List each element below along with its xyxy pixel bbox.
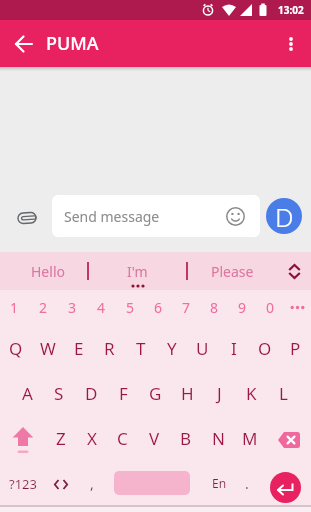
button[interactable]: Y xyxy=(156,324,187,369)
button[interactable] xyxy=(45,459,77,505)
staticText: 7 xyxy=(182,298,191,317)
button[interactable]: S xyxy=(43,369,75,414)
button[interactable]: B xyxy=(170,414,202,459)
staticText: 4 xyxy=(97,298,106,317)
button[interactable]: Z xyxy=(45,414,76,459)
staticText: S xyxy=(54,382,64,405)
button[interactable]: U xyxy=(187,324,218,369)
button[interactable]: D xyxy=(75,369,107,414)
button[interactable] xyxy=(0,414,45,459)
staticText: 9 xyxy=(238,298,247,317)
staticText: T xyxy=(136,337,146,360)
button[interactable] xyxy=(266,414,311,459)
button[interactable]: 8 xyxy=(200,290,228,324)
staticText: O xyxy=(258,337,272,360)
staticText: 1 xyxy=(10,298,19,317)
button[interactable]: X xyxy=(76,414,107,459)
button[interactable]: 0 xyxy=(256,290,284,324)
staticText: D xyxy=(275,199,294,234)
staticText: M xyxy=(242,427,258,450)
button[interactable]: T xyxy=(125,324,156,369)
staticText: K xyxy=(246,382,257,405)
staticText: , xyxy=(90,474,94,493)
staticText: 3 xyxy=(68,298,77,317)
button[interactable]: Hello xyxy=(0,252,87,290)
staticText: X xyxy=(87,427,97,450)
button[interactable]: I xyxy=(218,324,249,369)
button[interactable]: V xyxy=(138,414,170,459)
button[interactable] xyxy=(0,195,52,237)
button[interactable]: 4 xyxy=(87,290,116,324)
button[interactable]: 5 xyxy=(116,290,144,324)
staticText: 13:02 xyxy=(278,3,304,17)
button[interactable]: Q xyxy=(0,324,32,369)
staticText: B xyxy=(180,427,192,450)
staticText: V xyxy=(149,427,160,450)
button[interactable]: M xyxy=(234,414,266,459)
button[interactable]: L xyxy=(267,369,299,414)
staticText: C xyxy=(117,427,128,450)
staticText: Please xyxy=(211,262,254,281)
staticText: 8 xyxy=(210,298,219,317)
staticText: W xyxy=(40,337,56,360)
button[interactable] xyxy=(277,252,311,290)
staticText: R xyxy=(104,337,115,360)
button[interactable]: W xyxy=(32,324,63,369)
staticText: I xyxy=(231,337,237,360)
button[interactable]: Please xyxy=(188,252,277,290)
button[interactable]: K xyxy=(235,369,267,414)
staticText: Hello xyxy=(31,262,65,281)
staticText: N xyxy=(212,427,225,450)
staticText: 0 xyxy=(266,298,275,317)
staticText: E xyxy=(74,337,84,360)
button[interactable]: H xyxy=(171,369,203,414)
button[interactable]: ?123 xyxy=(0,459,45,505)
button[interactable]: 7 xyxy=(172,290,200,324)
staticText: J xyxy=(217,382,222,405)
staticText: En xyxy=(212,475,227,491)
button[interactable]: O xyxy=(249,324,280,369)
button[interactable] xyxy=(107,459,203,505)
button[interactable]: P xyxy=(280,324,311,369)
staticText: I'm xyxy=(127,262,148,281)
button[interactable]: Send message xyxy=(52,195,260,237)
button[interactable] xyxy=(259,459,311,505)
staticText: 6 xyxy=(154,298,163,317)
staticText: U xyxy=(196,337,209,360)
button[interactable]: D xyxy=(266,198,302,234)
button[interactable] xyxy=(284,290,311,324)
staticText: 2 xyxy=(39,298,48,317)
staticText: G xyxy=(149,382,162,405)
button[interactable]: N xyxy=(202,414,234,459)
staticText: 5 xyxy=(126,298,135,317)
button[interactable] xyxy=(273,28,305,60)
staticText: ?123 xyxy=(9,475,37,493)
button[interactable]: En xyxy=(203,459,235,505)
button[interactable]: 6 xyxy=(144,290,172,324)
button[interactable]: F xyxy=(107,369,139,414)
button[interactable]: 2 xyxy=(29,290,58,324)
button[interactable]: A xyxy=(12,369,43,414)
button[interactable]: G xyxy=(139,369,171,414)
staticText: A xyxy=(22,382,33,405)
staticText: H xyxy=(181,382,194,405)
button[interactable]: . xyxy=(235,459,259,505)
button[interactable]: , xyxy=(77,459,107,505)
button[interactable]: R xyxy=(94,324,125,369)
button[interactable]: 1 xyxy=(0,290,29,324)
staticText: Y xyxy=(167,337,177,360)
button[interactable]: 9 xyxy=(228,290,256,324)
button[interactable]: E xyxy=(63,324,94,369)
button[interactable]: 3 xyxy=(58,290,87,324)
staticText: L xyxy=(279,382,288,405)
staticText: . xyxy=(245,474,249,493)
staticText: Z xyxy=(56,427,66,450)
button[interactable]: J xyxy=(203,369,235,414)
button[interactable]: C xyxy=(107,414,138,459)
staticText: P xyxy=(290,337,301,360)
button[interactable]: I'm xyxy=(89,252,186,290)
staticText: Send message xyxy=(64,207,160,226)
staticText: PUMA xyxy=(46,31,99,56)
staticText: D xyxy=(85,382,98,405)
button[interactable] xyxy=(6,26,42,62)
